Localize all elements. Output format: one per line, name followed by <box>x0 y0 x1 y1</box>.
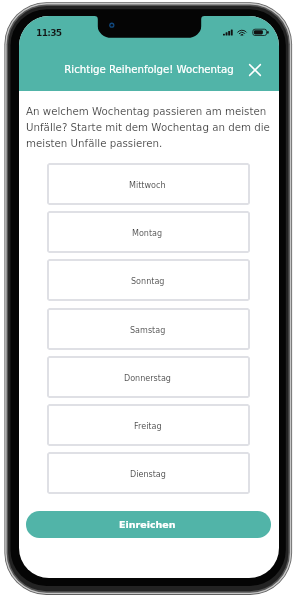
button[interactable]: Freitag <box>47 404 250 446</box>
button[interactable]: Dienstag <box>47 452 250 494</box>
staticText: Samstag <box>130 326 166 335</box>
staticText: An welchem Wochentag passieren am meiste… <box>26 105 276 149</box>
button[interactable]: Einreichen <box>26 511 271 538</box>
staticText: Einreichen <box>119 519 176 530</box>
staticText: Donnerstag <box>124 374 171 383</box>
staticText: Richtige Reihenfolge! Wochentag <box>19 64 279 76</box>
button[interactable]: Samstag <box>47 308 250 350</box>
button[interactable]: Mittwoch <box>47 163 250 205</box>
staticText: Mittwoch <box>129 181 166 190</box>
button[interactable]: Donnerstag <box>47 356 250 398</box>
staticText: Freitag <box>134 422 162 431</box>
staticText: Sonntag <box>131 277 165 286</box>
staticText: Dienstag <box>130 470 166 479</box>
button[interactable]: Sonntag <box>47 259 250 301</box>
button[interactable]: Montag <box>47 211 250 253</box>
staticText: 11:35 <box>36 28 62 39</box>
button[interactable]: Schliessen <box>245 60 265 80</box>
staticText: Montag <box>132 229 163 238</box>
